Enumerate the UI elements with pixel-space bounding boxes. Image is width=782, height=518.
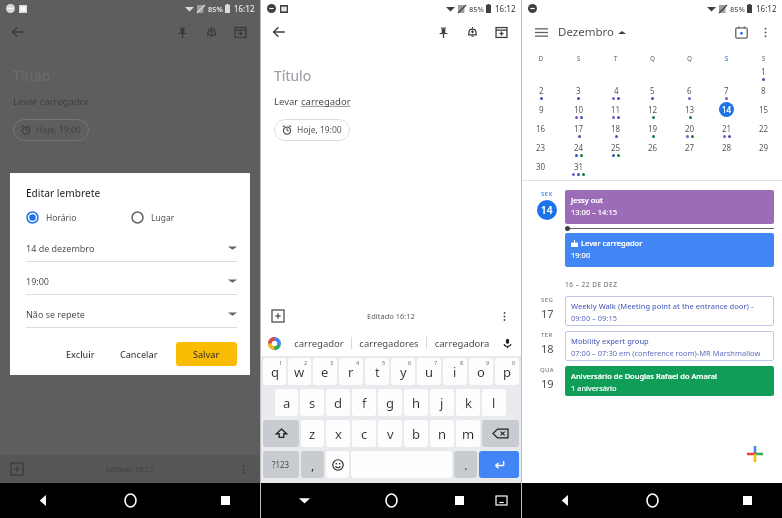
button[interactable]: 27 [671,139,708,158]
button[interactable] [326,451,349,478]
button[interactable]: 26 [634,139,671,158]
button[interactable] [263,420,299,447]
button[interactable]: r [339,358,363,385]
button[interactable]: Aniversário de Douglas Rafael do Amaral [565,366,774,396]
button[interactable]: Home [100,483,160,518]
button[interactable]: h [404,389,428,416]
button[interactable]: z [301,420,324,447]
button[interactable]: 25 [597,139,634,158]
button[interactable]: . [454,451,477,478]
button[interactable] [479,451,519,478]
button[interactable]: 13 [671,101,708,120]
button[interactable]: Archive [228,20,252,44]
button[interactable]: 18 [597,120,634,139]
button[interactable]: Back [267,20,291,44]
button[interactable]: Switch keyboard [481,483,521,518]
button[interactable]: 28 [708,139,745,158]
button[interactable]: 3 [560,82,597,101]
button[interactable]: Hoje, 19:00 [274,119,350,141]
button[interactable]: Cancelar [113,343,165,365]
button[interactable]: Excluir [59,343,102,365]
button[interactable]: Jessy out [565,190,774,224]
button[interactable]: i [443,358,467,385]
button[interactable]: a [275,389,298,416]
button[interactable]: u [417,358,441,385]
button[interactable]: Recents [190,483,260,518]
button[interactable]: 5 [634,82,671,101]
button[interactable]: 31 [560,158,597,177]
button[interactable]: Pin [170,20,194,44]
button[interactable]: 2 [522,82,560,101]
button[interactable]: Não se repete [26,301,237,328]
button[interactable]: 1 [745,63,782,82]
button[interactable]: 23 [522,139,560,158]
button[interactable]: 22 [745,120,782,139]
button[interactable]: m [456,420,480,447]
button[interactable]: Back [522,483,608,518]
button[interactable] [482,420,519,447]
button[interactable]: Weekly Walk (Meeting point at the entran… [565,296,774,326]
button[interactable]: Home [622,483,682,518]
button[interactable]: More options [493,305,515,327]
button[interactable]: 7 [708,82,745,101]
button[interactable]: Home [361,483,421,518]
button[interactable]: o [469,358,493,385]
button[interactable]: Mobility expert group [565,331,774,361]
button[interactable]: b [404,420,428,447]
button[interactable]: Menu [529,20,553,44]
button[interactable]: ?123 [263,451,299,478]
button[interactable]: 9 [522,101,560,120]
button[interactable]: , [301,451,324,478]
button[interactable]: carregador [287,337,351,350]
button[interactable]: 29 [745,139,782,158]
button[interactable]: w [288,358,311,385]
button[interactable]: Recents [712,483,782,518]
button[interactable]: 14 de dezembro [26,235,237,262]
button[interactable]: 19:00 [26,268,237,295]
button[interactable]: Add [6,458,28,480]
button[interactable]: g [378,389,402,416]
button[interactable]: Lugar [131,211,237,224]
button[interactable]: x [326,420,350,447]
button[interactable]: Dezembro [558,24,626,40]
button[interactable]: 19 [634,120,671,139]
button[interactable]: 4 [597,82,634,101]
button[interactable]: y [391,358,415,385]
button[interactable]: e [313,358,337,385]
button[interactable]: More options [753,20,777,44]
button[interactable]: 24 [560,139,597,158]
button[interactable]: Pin [431,20,455,44]
button[interactable]: Today [729,20,753,44]
button[interactable]: Back [0,483,86,518]
button[interactable]: carregadores [352,337,426,350]
button[interactable]: Horário [26,211,131,224]
button[interactable]: c [352,420,376,447]
button[interactable]: 30 [522,158,560,177]
button[interactable]: 12 [634,101,671,120]
button[interactable]: Back [6,20,30,44]
button[interactable]: Create event [738,437,772,471]
button[interactable]: 21 [708,120,745,139]
button[interactable]: Voice input [497,333,517,353]
button[interactable]: t [365,358,389,385]
button[interactable]: v [378,420,402,447]
button[interactable]: Recents [437,483,481,518]
button[interactable]: Salvar [176,342,237,366]
button[interactable]: 8 [745,82,782,101]
button[interactable]: Hide keyboard [261,483,347,518]
button[interactable]: 17 [560,120,597,139]
button[interactable]: 10 [560,101,597,120]
button[interactable]: Reminder [460,20,484,44]
button[interactable]: l [482,389,506,416]
